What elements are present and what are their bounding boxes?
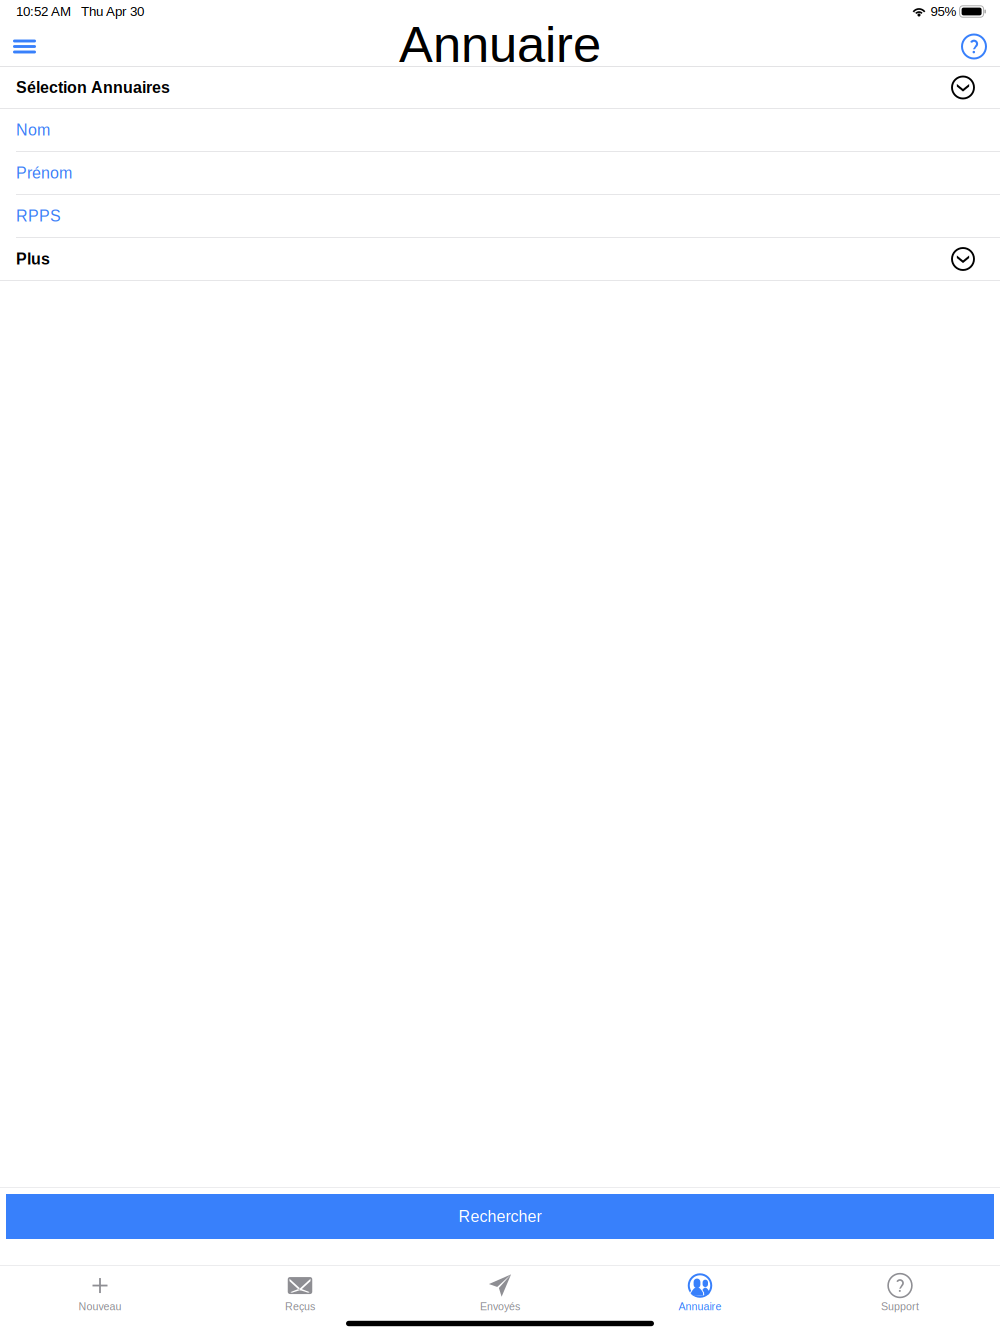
button[interactable]: Reçus	[200, 1260, 400, 1318]
button[interactable]: Rechercher	[6, 1194, 994, 1239]
button[interactable]: Menu	[0, 23, 52, 65]
staticText: Nom	[16, 121, 50, 139]
staticText: 10:52 AM	[16, 4, 71, 19]
staticText: 95%	[931, 4, 957, 19]
button[interactable]: Annuaire	[600, 1260, 800, 1318]
staticText: Annuaire	[678, 1300, 721, 1312]
staticText: Rechercher	[458, 1208, 541, 1225]
button[interactable]: Aide	[950, 23, 1000, 65]
staticText: Nouveau	[78, 1300, 121, 1312]
staticText: RPPS	[16, 207, 61, 225]
staticText: Thu Apr 30	[81, 4, 144, 19]
button[interactable]: Plus	[0, 238, 1000, 281]
button[interactable]: Sélection Annuaires	[0, 67, 1000, 109]
button[interactable]: RPPS	[0, 195, 1000, 238]
button[interactable]: Support	[800, 1260, 1000, 1318]
button[interactable]: Nom	[0, 109, 1000, 152]
button[interactable]: Envoyés	[400, 1260, 600, 1318]
staticText: Reçus	[285, 1300, 315, 1312]
staticText: Plus	[16, 250, 50, 268]
staticText: Annuaire	[399, 16, 601, 73]
staticText: Support	[881, 1300, 919, 1312]
staticText: Envoyés	[480, 1300, 520, 1312]
staticText: Sélection Annuaires	[16, 79, 170, 96]
button[interactable]: Nouveau	[0, 1260, 200, 1318]
button[interactable]: Prénom	[0, 152, 1000, 195]
staticText: Prénom	[16, 164, 72, 182]
